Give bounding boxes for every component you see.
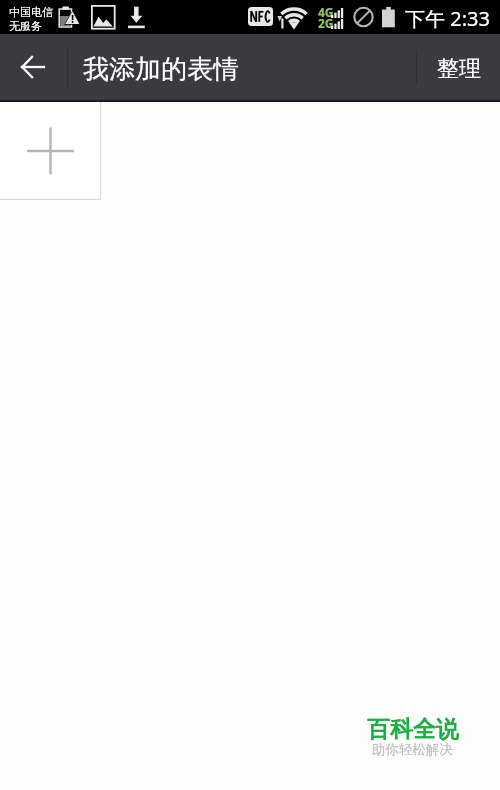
staticText: 百科全说 bbox=[367, 715, 459, 744]
staticText: 我添加的表情 bbox=[83, 53, 239, 86]
staticText: 整理 bbox=[437, 55, 481, 83]
staticText: 下午 2:33 bbox=[405, 5, 490, 32]
staticText: 助你轻松解决 bbox=[372, 741, 453, 758]
staticText: 4G bbox=[318, 4, 334, 20]
staticText: 中国电信 bbox=[9, 5, 53, 19]
button[interactable]: Back bbox=[0, 34, 66, 100]
staticText: 无服务 bbox=[9, 19, 42, 33]
staticText: 2G bbox=[318, 15, 334, 31]
button[interactable]: Add emoji bbox=[0, 102, 101, 200]
button[interactable]: 整理 bbox=[417, 34, 500, 100]
